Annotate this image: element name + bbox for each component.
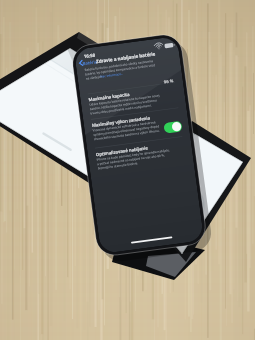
button[interactable]: Photo of an iPhone showing Battery Healt… [0, 0, 255, 340]
